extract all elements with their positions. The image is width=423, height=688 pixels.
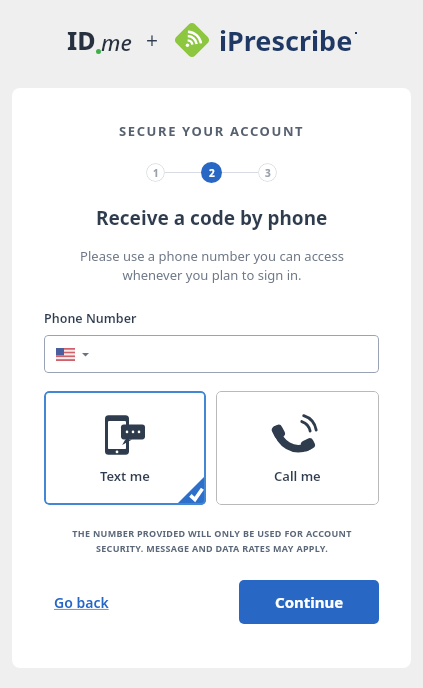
- staticText: Text me: [100, 467, 150, 485]
- button[interactable]: 1: [146, 163, 165, 182]
- staticText: Go back: [54, 593, 109, 612]
- button[interactable]: 2: [201, 162, 222, 183]
- staticText: iPrescribe: [219, 22, 353, 59]
- staticText: 2: [209, 166, 215, 180]
- button[interactable]: Go back: [44, 583, 119, 622]
- staticText: THE NUMBER PROVIDED WILL ONLY BE USED FO…: [72, 527, 352, 554]
- staticText: Continue: [275, 592, 344, 612]
- staticText: 3: [265, 166, 271, 180]
- button[interactable]: Call me: [216, 391, 379, 505]
- staticText: +: [146, 26, 159, 55]
- button[interactable]: [44, 335, 379, 373]
- staticText: 1: [153, 166, 159, 180]
- staticText: SECURE YOUR ACCOUNT: [119, 122, 305, 140]
- button[interactable]: Continue: [239, 580, 379, 624]
- staticText: Phone Number: [44, 310, 137, 327]
- staticText: Please use a phone number you can access…: [80, 247, 344, 284]
- staticText: me: [101, 27, 132, 57]
- staticText: Receive a code by phone: [96, 205, 328, 231]
- button[interactable]: 3: [258, 163, 277, 182]
- staticText: ID: [67, 23, 96, 57]
- button[interactable]: Text me: [44, 391, 206, 505]
- staticText: Call me: [274, 467, 321, 485]
